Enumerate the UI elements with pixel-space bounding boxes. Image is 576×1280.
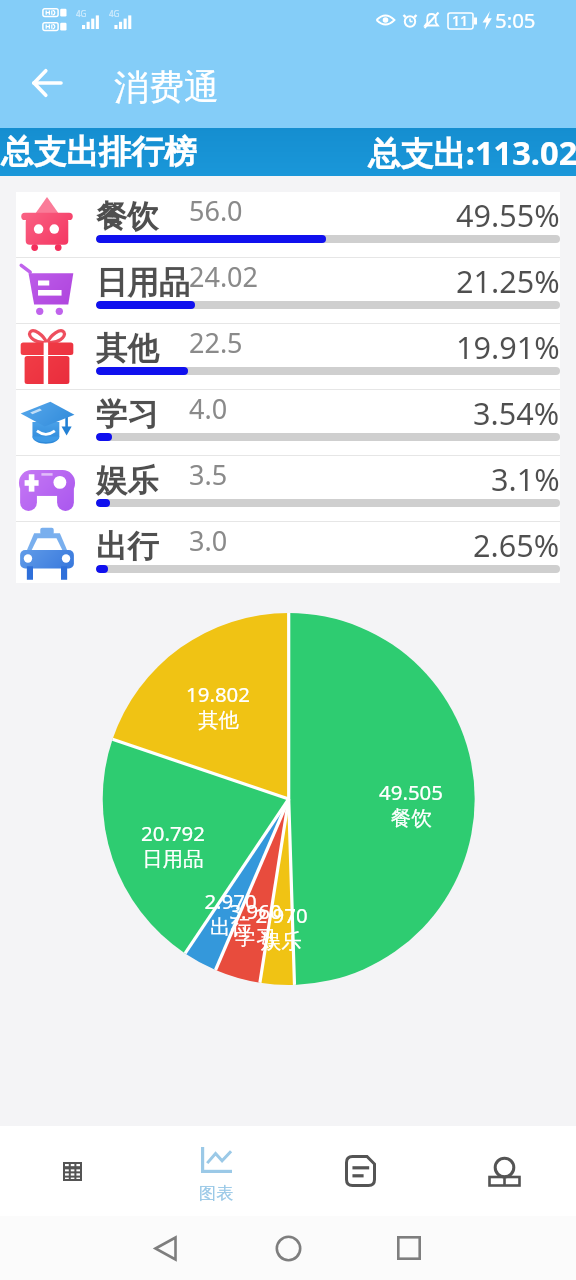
staticText: 娱乐 <box>261 928 302 954</box>
staticText: 2.970 <box>204 887 257 915</box>
button[interactable]: Back <box>11 47 83 119</box>
button[interactable]: 日用品 <box>16 258 560 323</box>
button[interactable]: Table <box>0 1126 144 1216</box>
button[interactable]: Back <box>115 1216 215 1280</box>
button[interactable]: Profile <box>432 1126 576 1216</box>
staticText: 图表 <box>199 1182 234 1204</box>
staticText: 4G <box>109 8 120 19</box>
staticText: 餐饮 <box>391 805 432 831</box>
staticText: 学习 <box>96 395 159 434</box>
staticText: 2.970 <box>255 901 308 929</box>
button[interactable]: 出行 <box>16 522 560 583</box>
staticText: 3.0 <box>189 522 228 559</box>
button[interactable]: 学习 <box>16 390 560 455</box>
staticText: 学习 <box>235 924 276 950</box>
button[interactable]: Chart <box>144 1126 288 1216</box>
staticText: 5:05 <box>495 6 536 34</box>
button[interactable]: 餐饮 <box>16 192 560 257</box>
staticText: 消费通 <box>114 65 219 109</box>
staticText: 19.802 <box>186 680 250 708</box>
staticText: 2.65% <box>473 524 560 566</box>
button[interactable]: 娱乐 <box>16 456 560 521</box>
staticText: 11 <box>452 11 469 30</box>
staticText: 49.55% <box>456 194 560 236</box>
button[interactable]: Home <box>238 1216 338 1280</box>
staticText: 总支出:113.02 <box>368 130 576 175</box>
staticText: 49.505 <box>379 778 443 806</box>
staticText: 3.54% <box>473 392 560 434</box>
staticText: 日用品 <box>96 263 189 302</box>
staticText: 出行 <box>96 527 159 566</box>
staticText: 其他 <box>96 329 159 368</box>
staticText: 21.25% <box>456 260 560 302</box>
staticText: 总支出排行榜 <box>1 132 197 173</box>
staticText: 22.5 <box>189 324 243 361</box>
staticText: 餐饮 <box>96 197 159 236</box>
staticText: 3.5 <box>189 456 228 493</box>
staticText: 3.1% <box>491 458 560 500</box>
staticText: 4.0 <box>189 390 228 427</box>
staticText: 3.960 <box>229 897 282 925</box>
button[interactable]: Recents <box>359 1216 459 1280</box>
staticText: 日用品 <box>142 846 204 872</box>
staticText: 24.02 <box>189 258 259 295</box>
staticText: 娱乐 <box>96 461 159 500</box>
staticText: 20.792 <box>141 819 205 847</box>
staticText: 其他 <box>198 707 239 733</box>
button[interactable]: Notes <box>288 1126 432 1216</box>
staticText: 出行 <box>210 914 251 940</box>
staticText: 56.0 <box>189 192 243 229</box>
staticText: 4G <box>76 8 87 19</box>
button[interactable]: 其他 <box>16 324 560 389</box>
staticText: 19.91% <box>456 326 560 368</box>
